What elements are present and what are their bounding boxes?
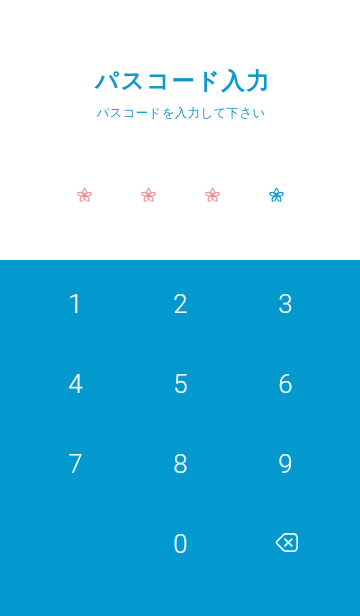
staticText: パスコードを入力して下さい: [96, 105, 266, 121]
button[interactable]: 0: [128, 501, 233, 581]
button[interactable]: 4: [22, 341, 128, 421]
button[interactable]: 3: [233, 261, 338, 341]
button[interactable]: 2: [128, 261, 233, 341]
staticText: 0: [173, 529, 188, 559]
button[interactable]: 5: [128, 341, 233, 421]
button[interactable]: 7: [22, 421, 128, 501]
staticText: 9: [278, 449, 293, 479]
button[interactable]: 9: [233, 421, 338, 501]
button[interactable]: 6: [233, 341, 338, 421]
staticText: 3: [278, 289, 293, 319]
staticText: 7: [68, 449, 83, 479]
staticText: 6: [278, 369, 293, 399]
staticText: パスコード入力: [95, 67, 271, 96]
button[interactable]: 1: [22, 261, 128, 341]
staticText: 8: [173, 449, 188, 479]
staticText: 4: [68, 369, 83, 399]
staticText: 5: [173, 369, 188, 399]
button[interactable]: Backspace: [233, 501, 338, 581]
staticText: 1: [68, 289, 83, 319]
button[interactable]: 8: [128, 421, 233, 501]
staticText: 2: [173, 289, 188, 319]
